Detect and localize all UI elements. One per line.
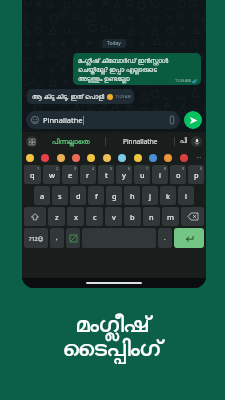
staticText: f [95, 191, 98, 201]
staticText: r [86, 170, 90, 180]
button[interactable]: r [80, 165, 96, 184]
staticText: t [105, 170, 108, 180]
button[interactable]: Language [66, 228, 80, 248]
button[interactable]: z [48, 207, 65, 226]
button[interactable]: Emoji [72, 154, 80, 162]
button[interactable]: Emoji [134, 154, 142, 162]
button[interactable]: h [124, 186, 140, 205]
staticText: o [176, 170, 181, 180]
staticText: 11:26 AM [175, 78, 191, 83]
button[interactable]: f [88, 186, 104, 205]
staticText: ആ കിടു കിടു, ഇത് പൊളി [32, 92, 105, 101]
staticText: n [149, 212, 154, 222]
button[interactable]: d [70, 186, 86, 205]
button[interactable]: m [162, 207, 179, 226]
staticText: ?12☺ [29, 235, 44, 242]
staticText: അടുത്തും ഉണ്ടല്ലോ [78, 74, 130, 83]
button[interactable]: c [86, 207, 103, 226]
staticText: , [56, 234, 58, 242]
button[interactable]: x [67, 207, 84, 226]
button[interactable]: Emoji [87, 154, 95, 162]
button[interactable]: പിന്നല്ലാതെ [37, 138, 105, 145]
button[interactable]: o [170, 165, 186, 184]
button[interactable]: Emoji [57, 154, 65, 162]
button[interactable]: പി [175, 138, 191, 145]
staticText: പി [180, 138, 187, 145]
button[interactable]: b [124, 207, 141, 226]
button[interactable]: p [188, 165, 204, 184]
staticText: c [93, 212, 97, 222]
button[interactable]: Comma [50, 228, 64, 248]
staticText: i [159, 170, 161, 180]
staticText: 8 [164, 166, 167, 171]
staticText: 5 [110, 166, 113, 171]
button[interactable]: g [106, 186, 122, 205]
staticText: v [112, 212, 116, 222]
staticText: p [194, 170, 199, 180]
button[interactable]: t [98, 165, 114, 184]
button[interactable]: Pinnallathe [26, 111, 180, 129]
button[interactable]: n [143, 207, 160, 226]
staticText: q [30, 170, 35, 180]
button[interactable]: l [178, 186, 194, 205]
staticText: l [185, 191, 187, 201]
button[interactable]: w [43, 165, 60, 184]
staticText: s [58, 191, 62, 201]
button[interactable]: ?12☺ [24, 228, 48, 248]
staticText: . [164, 234, 166, 242]
button[interactable]: Emoji [149, 154, 157, 162]
staticText: Pinnallathe [123, 137, 158, 146]
staticText: j [149, 191, 151, 201]
button[interactable]: Backspace [181, 207, 204, 226]
button[interactable]: Shift [24, 207, 46, 226]
button[interactable]: j [142, 186, 158, 205]
staticText: e [68, 170, 73, 180]
staticText: മംഗ്ലീഷ് [76, 314, 150, 336]
button[interactable]: k [160, 186, 176, 205]
staticText: 2 [56, 166, 59, 171]
button[interactable]: Voice input [191, 136, 202, 147]
staticText: h [130, 191, 135, 201]
button[interactable]: Send [184, 111, 202, 129]
button[interactable]: a [34, 186, 50, 205]
staticText: 3 [74, 166, 77, 171]
staticText: 6 [128, 166, 131, 171]
staticText: 9 [182, 166, 185, 171]
staticText: k [166, 191, 171, 201]
staticText: g [112, 191, 117, 201]
button[interactable]: Period [158, 228, 172, 248]
staticText: a [40, 191, 45, 201]
button[interactable]: Emoji [164, 154, 172, 162]
button[interactable]: Emoji [41, 154, 49, 162]
button[interactable]: Pinnallathe [106, 137, 174, 146]
staticText: പിന്നല്ലാതെ [52, 138, 90, 145]
staticText: 0 [200, 166, 203, 171]
button[interactable]: i [152, 165, 168, 184]
staticText: d [76, 191, 81, 201]
staticText: Today [107, 40, 121, 47]
button[interactable]: Emoji [26, 154, 34, 162]
button[interactable]: Enter [174, 228, 204, 248]
staticText: u [140, 170, 145, 180]
staticText: 4 [92, 166, 95, 171]
button[interactable]: e [62, 165, 78, 184]
button[interactable]: Keyboard menu [26, 136, 37, 147]
button[interactable]: v [105, 207, 122, 226]
button[interactable]: s [52, 186, 68, 205]
staticText: z [55, 212, 59, 222]
button[interactable]: y [116, 165, 132, 184]
button[interactable]: q [24, 165, 41, 184]
staticText: ••• [197, 155, 201, 160]
button[interactable]: More emoji [195, 155, 202, 160]
staticText: 11:29 AM [115, 94, 131, 99]
button[interactable]: Emoji [103, 154, 111, 162]
staticText: x [74, 212, 78, 222]
staticText: 1 [37, 166, 40, 171]
staticText: മംഗ്ലീഷ് കീബോർഡ് ഇൻസ്റ്റാൾ [78, 56, 169, 65]
button[interactable]: Emoji [180, 154, 188, 162]
button[interactable]: u [134, 165, 150, 184]
staticText: ചെയ്തില്ലേ? ഇപ്പാ എല്ലാരുടെ [78, 65, 157, 74]
staticText: Pinnallathe [43, 115, 83, 125]
button[interactable]: Emoji [118, 154, 126, 162]
